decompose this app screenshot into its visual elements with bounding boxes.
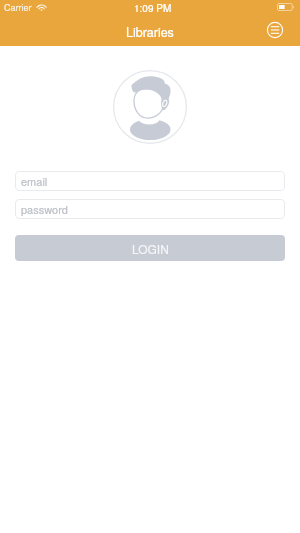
button[interactable]: LOGIN (15, 235, 285, 261)
staticText: LOGIN (132, 240, 169, 257)
staticText: password (21, 201, 68, 217)
button[interactable]: email (15, 171, 285, 191)
button[interactable]: Menu (264, 19, 286, 41)
staticText: email (21, 173, 48, 189)
staticText: Carrier (4, 1, 32, 14)
staticText: 1:09 PM (134, 1, 172, 15)
staticText: Libraries (126, 23, 174, 41)
button[interactable]: password (15, 199, 285, 219)
